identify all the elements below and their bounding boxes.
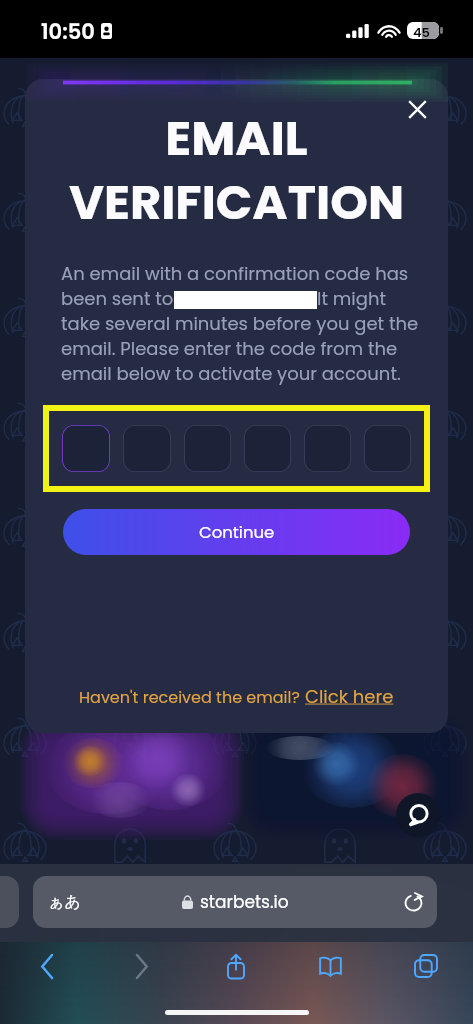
button[interactable]: Code digit 4 xyxy=(244,425,291,472)
button[interactable]: Open chat xyxy=(396,793,440,837)
staticText: An email with a confirmation code has xyxy=(61,261,409,286)
button[interactable]: Click here xyxy=(305,684,394,709)
button[interactable]: Reload xyxy=(389,876,437,928)
staticText: ぁあ xyxy=(48,892,81,912)
button[interactable]: Tabs xyxy=(378,944,473,988)
button[interactable]: Back xyxy=(0,944,94,988)
button[interactable]: Code digit 3 xyxy=(184,425,231,472)
staticText: EMAIL xyxy=(25,105,448,172)
button[interactable]: ぁあ xyxy=(33,876,437,928)
staticText: take several minutes before you get the xyxy=(61,311,419,336)
staticText: starbets.io xyxy=(200,890,289,914)
button[interactable]: Share xyxy=(188,944,283,988)
staticText: Continue xyxy=(199,521,275,544)
button[interactable]: Code digit 6 xyxy=(364,425,411,472)
button[interactable]: Code digit 2 xyxy=(123,425,171,472)
button[interactable]: Continue xyxy=(63,509,410,555)
staticText: 10:50 xyxy=(41,17,95,46)
staticText: been sent to xyxy=(61,286,174,311)
staticText: It might xyxy=(317,286,386,311)
button[interactable]: Forward xyxy=(94,944,188,988)
staticText: Haven't received the email? xyxy=(79,686,305,708)
staticText: Click here xyxy=(305,684,394,709)
button[interactable]: Code digit 1 xyxy=(62,425,110,472)
staticText: 45 xyxy=(413,23,430,41)
staticText: VERIFICATION xyxy=(25,169,448,236)
staticText: email. Please enter the code from the xyxy=(61,336,398,361)
staticText: email below to activate your account. xyxy=(61,361,401,386)
button[interactable]: Close xyxy=(395,87,439,131)
button[interactable]: Bookmarks xyxy=(283,944,378,988)
button[interactable]: Code digit 5 xyxy=(304,425,351,472)
